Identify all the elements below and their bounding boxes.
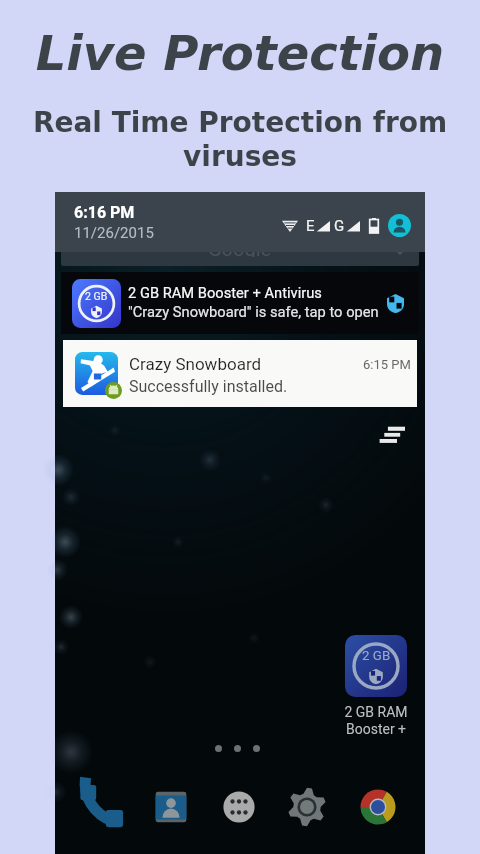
- button[interactable]: Phone: [77, 783, 125, 831]
- button[interactable]: Crazy Snowboard: [63, 340, 417, 407]
- staticText: G: [334, 217, 345, 235]
- staticText: Successfully installed.: [129, 377, 288, 396]
- staticText: Google: [208, 246, 272, 257]
- staticText: 6:15 PM: [363, 357, 411, 372]
- button[interactable]: 2 GB: [321, 635, 431, 738]
- staticText: E: [306, 217, 315, 235]
- button[interactable]: Settings: [283, 783, 331, 831]
- staticText: "Crazy Snowboard" is safe, tap to open: [128, 303, 379, 320]
- button[interactable]: Clear all notifications: [375, 420, 405, 450]
- button[interactable]: Contacts: [147, 783, 195, 831]
- staticText: Crazy Snowboard: [129, 354, 262, 374]
- staticText: Live Protection: [0, 25, 480, 81]
- staticText: 6:16 PM: [74, 203, 135, 222]
- staticText: 11/26/2015: [74, 224, 154, 242]
- staticText: 2 GB: [85, 290, 108, 302]
- staticText: 2 GB: [362, 648, 391, 664]
- staticText: 2 GB RAM Booster + Antivirus: [128, 284, 322, 301]
- button[interactable]: 2 GB: [61, 272, 419, 334]
- button[interactable]: Chrome: [354, 783, 402, 831]
- button[interactable]: Apps: [215, 783, 263, 831]
- staticText: Real Time Protection from viruses: [0, 106, 480, 173]
- staticText: 2 GB RAM Booster +: [344, 704, 408, 738]
